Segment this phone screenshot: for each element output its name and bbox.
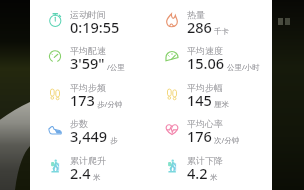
button[interactable]: 步数 (30, 115, 147, 146)
staticText: 145 (187, 90, 212, 110)
staticText: 步/分钟 (97, 99, 123, 109)
button[interactable]: 平均心率 (147, 115, 264, 146)
staticText: 2.4 (70, 163, 91, 183)
staticText: 公里/小时 (227, 62, 260, 72)
staticText: 步数 (70, 118, 88, 129)
staticText: 厘米 (214, 100, 229, 109)
staticText: 米 (210, 173, 218, 182)
staticText: 3'59" (70, 53, 105, 73)
staticText: 步 (110, 136, 118, 145)
staticText: 次/分钟 (214, 135, 240, 145)
staticText: 平均步幅 (187, 82, 223, 93)
staticText: 热量 (187, 9, 205, 20)
staticText: 米 (93, 173, 101, 182)
button[interactable]: 平均步频 (30, 79, 147, 110)
staticText: 千卡 (214, 27, 229, 36)
staticText: 平均速度 (187, 45, 223, 56)
staticText: 运动时间 (70, 9, 106, 20)
staticText: 0:19:55 (70, 17, 120, 37)
staticText: /公里 (107, 62, 125, 72)
staticText: 累计爬升 (70, 155, 106, 166)
staticText: 3,449 (70, 126, 108, 146)
staticText: 平均步频 (70, 82, 106, 93)
button[interactable]: 累计下降 (147, 152, 264, 183)
staticText: 4.2 (187, 163, 208, 183)
staticText: 286 (187, 17, 212, 37)
staticText: 173 (70, 90, 95, 110)
staticText: 平均配速 (70, 45, 106, 56)
staticText: 176 (187, 126, 212, 146)
button[interactable]: 平均步幅 (147, 79, 264, 110)
button[interactable]: 累计爬升 (30, 152, 147, 183)
button[interactable]: 热量 (147, 6, 264, 37)
button[interactable]: 平均速度 (147, 42, 264, 73)
button[interactable]: 运动时间 (30, 6, 147, 37)
staticText: 平均心率 (187, 118, 223, 129)
button[interactable]: 平均配速 (30, 42, 147, 73)
staticText: 15.06 (187, 53, 225, 73)
staticText: 累计下降 (187, 155, 223, 166)
